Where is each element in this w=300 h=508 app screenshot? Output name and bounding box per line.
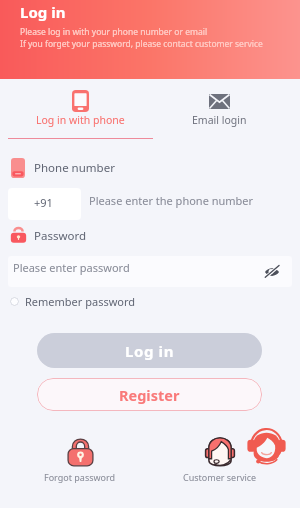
button[interactable]: Register [37,378,262,411]
staticText: Email login [192,113,247,127]
staticText: Log in with phone [36,113,125,127]
staticText: Remember password [25,294,136,309]
staticText: +91 [34,195,53,210]
staticText: Please enter the phone number [89,193,254,208]
staticText: Log in [20,2,66,22]
staticText: Phone number [34,160,115,176]
button[interactable]: +91 [8,188,81,220]
staticText: Please enter password [13,260,263,275]
staticText: Log in [125,341,174,361]
staticText: Customer service [183,471,257,483]
button[interactable]: Email login [160,79,278,139]
button[interactable]: Forgot password [36,437,124,483]
button[interactable]: Customer service [173,435,266,483]
button[interactable]: Log in [37,333,262,368]
button[interactable]: Contact customer service [247,427,286,467]
button[interactable]: Please enter password [8,256,292,287]
staticText: Password [34,228,87,244]
staticText: If you forget your password, please cont… [20,38,263,50]
staticText: Register [119,385,180,405]
button[interactable]: Remember password [8,292,138,311]
button[interactable]: Show password [263,262,281,280]
staticText: Forgot password [44,471,116,483]
button[interactable]: Please enter the phone number [89,188,292,220]
staticText: Please log in with your phone number or … [20,26,208,38]
button[interactable]: Log in with phone [8,79,153,139]
